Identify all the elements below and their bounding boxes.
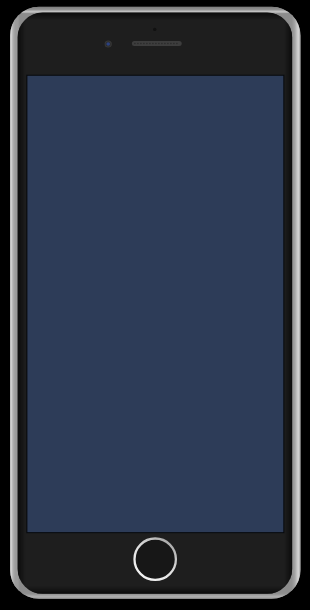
button[interactable]: Home button	[135, 539, 176, 580]
